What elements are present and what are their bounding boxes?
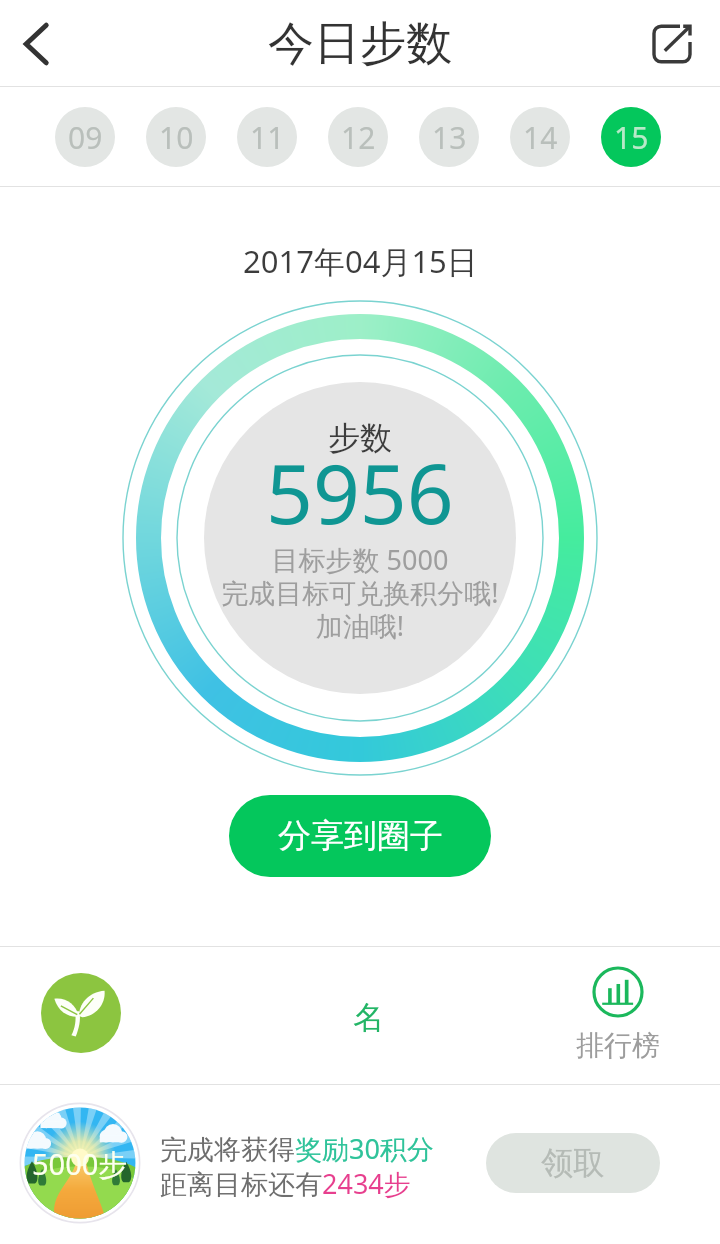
staticText: 5956 — [266, 436, 454, 548]
button[interactable]: 排行榜 — [557, 966, 679, 1063]
button[interactable]: 11 — [237, 107, 297, 167]
button[interactable]: 名 — [318, 967, 418, 1067]
staticText: 目标步数 5000 完成目标可兑换积分哦! 加油哦! — [221, 541, 499, 644]
staticText: 2017年04月15日 — [243, 240, 478, 282]
staticText: 完成将获得奖励30积分 距离目标还有2434步 — [160, 1130, 434, 1202]
button[interactable]: 13 — [419, 107, 479, 167]
staticText: 12 — [341, 117, 376, 158]
staticText: 10 — [159, 117, 194, 158]
staticText: 09 — [68, 117, 103, 158]
button[interactable]: 15 — [601, 107, 661, 167]
staticText: 11 — [250, 117, 285, 158]
button[interactable]: Steps garden — [41, 973, 121, 1053]
button[interactable]: 5000 step badge — [20, 1103, 140, 1223]
staticText: 13 — [432, 117, 467, 158]
button[interactable]: 10 — [146, 107, 206, 167]
staticText: 15 — [614, 117, 649, 158]
button[interactable]: Share — [634, 0, 710, 87]
button[interactable]: 分享到圈子 — [229, 795, 491, 877]
button[interactable]: 领取 — [486, 1133, 660, 1193]
button[interactable]: 09 — [55, 107, 115, 167]
staticText: 排行榜 — [576, 1028, 660, 1063]
button[interactable]: 14 — [510, 107, 570, 167]
staticText: 14 — [523, 117, 558, 158]
staticText: 名 — [353, 998, 384, 1037]
button[interactable]: Back — [0, 0, 71, 87]
staticText: 步数 — [328, 418, 392, 458]
staticText: 分享到圈子 — [278, 815, 443, 857]
staticText: 今日步数 — [268, 15, 452, 73]
button[interactable]: 12 — [328, 107, 388, 167]
staticText: 领取 — [541, 1143, 605, 1183]
staticText: 5000步 — [32, 1144, 128, 1184]
